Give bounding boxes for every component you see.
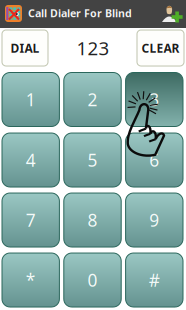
button[interactable]: 0 [64,253,121,307]
button[interactable]: 4 [2,133,59,187]
staticText: 9 [149,208,159,231]
button[interactable]: 6 [126,133,183,187]
button[interactable]: 2 [64,72,121,126]
staticText: 2 [87,88,97,111]
button[interactable]: Add contact [160,1,183,23]
button[interactable]: 7 [2,193,59,247]
staticText: # [149,268,160,291]
staticText: DIAL [10,40,39,56]
button[interactable]: DIAL [2,30,48,66]
staticText: 8 [87,208,97,231]
staticText: 3 [149,88,159,111]
button[interactable]: 8 [64,193,121,247]
button[interactable]: 9 [126,193,183,247]
staticText: 1 [26,88,36,111]
staticText: Call Dialer For Blind [28,6,132,20]
staticText: 6 [149,148,159,171]
button[interactable]: 5 [64,133,121,187]
button[interactable]: # [126,253,183,307]
button[interactable]: CLEAR [137,30,184,66]
staticText: * [26,268,36,291]
staticText: 0 [87,268,97,291]
staticText: CLEAR [141,40,179,56]
button[interactable]: * [2,253,59,307]
staticText: 4 [26,148,36,171]
button[interactable]: 1 [2,72,59,126]
button[interactable]: 3 [126,72,183,126]
staticText: 5 [87,148,97,171]
staticText: 7 [26,208,36,231]
staticText: 123 [76,36,109,60]
